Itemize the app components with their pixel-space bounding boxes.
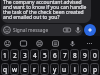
staticText: and want to know if you can handle — [3, 4, 87, 11]
staticText: 8 — [73, 51, 77, 60]
staticText: 6 — [53, 51, 57, 60]
button[interactable]: Stickers — [34, 38, 44, 48]
staticText: 4 — [33, 51, 37, 60]
button[interactable]: Camera — [61, 23, 72, 36]
button[interactable]: i — [70, 63, 79, 75]
button[interactable]: GIF — [18, 38, 28, 48]
button[interactable]: 2 — [10, 49, 19, 61]
button[interactable]: Voice input — [67, 38, 77, 48]
button[interactable]: 9 — [80, 49, 89, 61]
button[interactable]: r — [30, 63, 39, 75]
staticText: y — [53, 65, 57, 74]
button[interactable]: 7 — [60, 49, 69, 61]
button[interactable]: 0 — [90, 49, 99, 61]
staticText: Signal message — [13, 27, 49, 34]
staticText: i — [74, 65, 76, 74]
button[interactable]: The company accountant advised — [1, 0, 91, 23]
staticText: 7 — [63, 51, 67, 60]
button[interactable]: 8 — [70, 49, 79, 61]
staticText: q — [3, 65, 7, 74]
staticText: 1 — [3, 51, 7, 60]
staticText: p — [93, 65, 97, 74]
staticText: the task of the check been created — [3, 9, 84, 16]
staticText: u — [62, 65, 67, 74]
button[interactable]: t — [40, 63, 49, 75]
button[interactable]: u — [60, 63, 69, 75]
staticText: 2 — [13, 51, 17, 60]
button[interactable]: 5 — [40, 49, 49, 61]
button[interactable]: o — [80, 63, 89, 75]
button[interactable]: Clipboard — [50, 38, 60, 48]
staticText: The company accountant advised — [3, 0, 82, 6]
button[interactable]: More options — [84, 38, 94, 48]
button[interactable]: w — [10, 63, 19, 75]
button[interactable]: Add attachment — [84, 24, 96, 36]
staticText: t — [43, 65, 46, 74]
button[interactable] — [1, 24, 83, 36]
button[interactable]: 4 — [30, 49, 39, 61]
button[interactable]: y — [50, 63, 59, 75]
staticText: 3 — [23, 51, 27, 60]
button[interactable]: Emoji — [2, 38, 12, 48]
button[interactable]: Voice message — [72, 23, 83, 36]
button[interactable]: Emoji — [1, 23, 12, 36]
staticText: and emailed out to you? — [3, 14, 60, 21]
staticText: 5 — [43, 51, 47, 60]
staticText: 9 — [83, 51, 87, 60]
staticText: w — [12, 65, 18, 74]
button[interactable]: p — [90, 63, 99, 75]
button[interactable]: 1 — [1, 49, 9, 61]
staticText: r — [33, 65, 36, 74]
staticText: e — [23, 65, 27, 74]
button[interactable]: 6 — [50, 49, 59, 61]
staticText: o — [83, 65, 87, 74]
button[interactable]: e — [20, 63, 29, 75]
button[interactable]: q — [1, 63, 9, 75]
button[interactable]: 3 — [20, 49, 29, 61]
staticText: 0 — [93, 51, 97, 60]
